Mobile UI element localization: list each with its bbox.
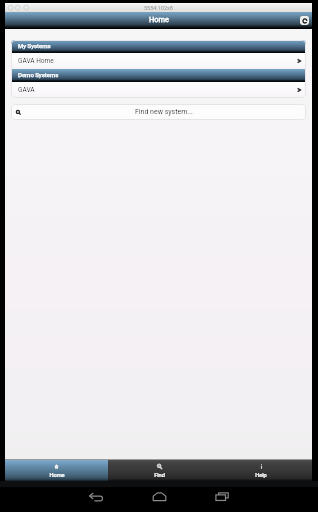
staticText: Find new system... [135, 108, 193, 116]
staticText: Help [255, 472, 267, 479]
button[interactable]: GAVA [11, 82, 306, 98]
staticText: Home [149, 15, 169, 24]
button[interactable]: GAVA Home [11, 53, 306, 69]
button[interactable]: Find new system... [11, 104, 306, 120]
staticText: Find [154, 472, 165, 479]
staticText: GAVA [18, 86, 35, 94]
button[interactable]: Recents [202, 481, 243, 512]
staticText: GAVA Home [18, 57, 54, 65]
staticText: My Systems [18, 42, 51, 49]
button[interactable]: Find [108, 460, 210, 481]
button[interactable]: Refresh [300, 16, 309, 25]
staticText: Home [49, 472, 65, 479]
staticText: Demo Systems [18, 71, 59, 78]
button[interactable]: Back [76, 481, 117, 512]
staticText: 5554:102x8 [144, 5, 173, 11]
button[interactable]: Home [139, 481, 180, 512]
button[interactable]: Home [5, 460, 108, 481]
button[interactable]: Help [210, 460, 312, 481]
